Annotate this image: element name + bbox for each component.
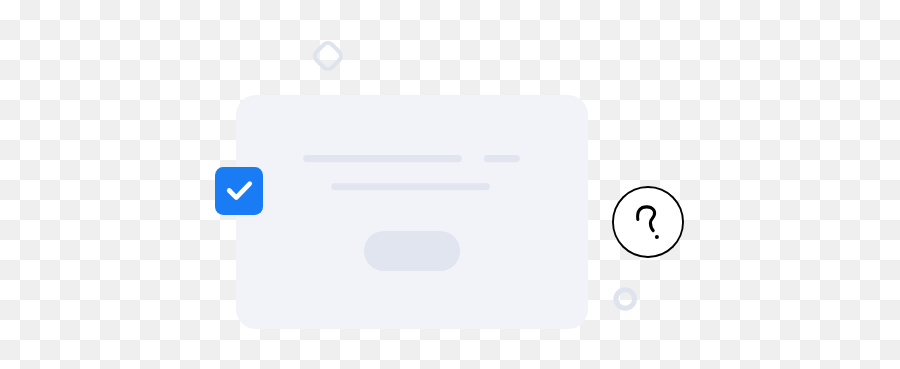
button[interactable]: Continue	[364, 231, 460, 271]
button[interactable]: Completed	[215, 167, 263, 215]
button[interactable]: Help	[612, 186, 684, 258]
